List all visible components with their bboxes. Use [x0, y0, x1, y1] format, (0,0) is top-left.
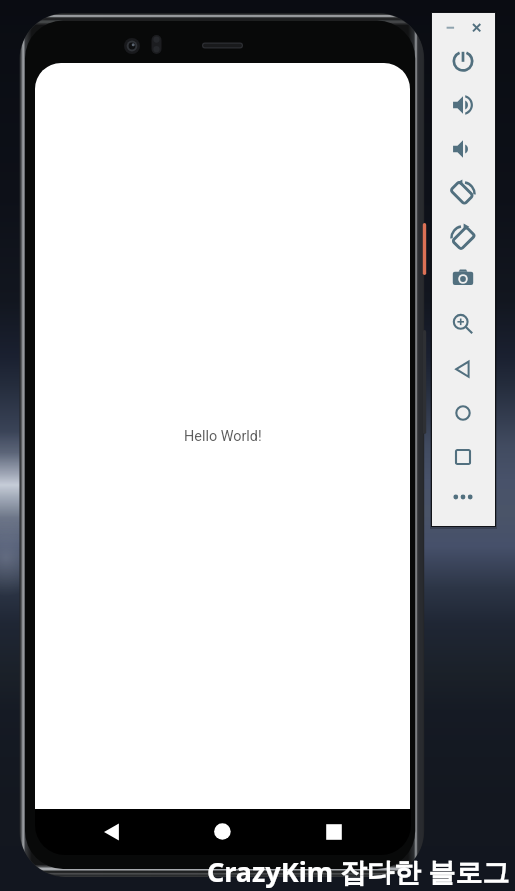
- button[interactable]: Overview: [447, 441, 479, 473]
- button[interactable]: Minimize: [438, 17, 462, 41]
- button[interactable]: Close: [464, 17, 488, 41]
- button[interactable]: Power: [447, 45, 479, 77]
- staticText: CrazyKim 잡다한 블로그: [207, 853, 510, 890]
- button[interactable]: Zoom in: [447, 309, 479, 341]
- button[interactable]: Take screenshot: [447, 262, 479, 294]
- button[interactable]: Rotate left: [447, 177, 479, 209]
- button[interactable]: More options: [447, 481, 479, 513]
- staticText: Hello World!: [184, 428, 262, 445]
- button[interactable]: Home: [447, 397, 479, 429]
- button[interactable]: Volume down: [447, 133, 479, 165]
- button[interactable]: Volume up: [447, 89, 479, 121]
- button[interactable]: Back: [447, 353, 479, 385]
- button[interactable]: Rotate right: [447, 221, 479, 253]
